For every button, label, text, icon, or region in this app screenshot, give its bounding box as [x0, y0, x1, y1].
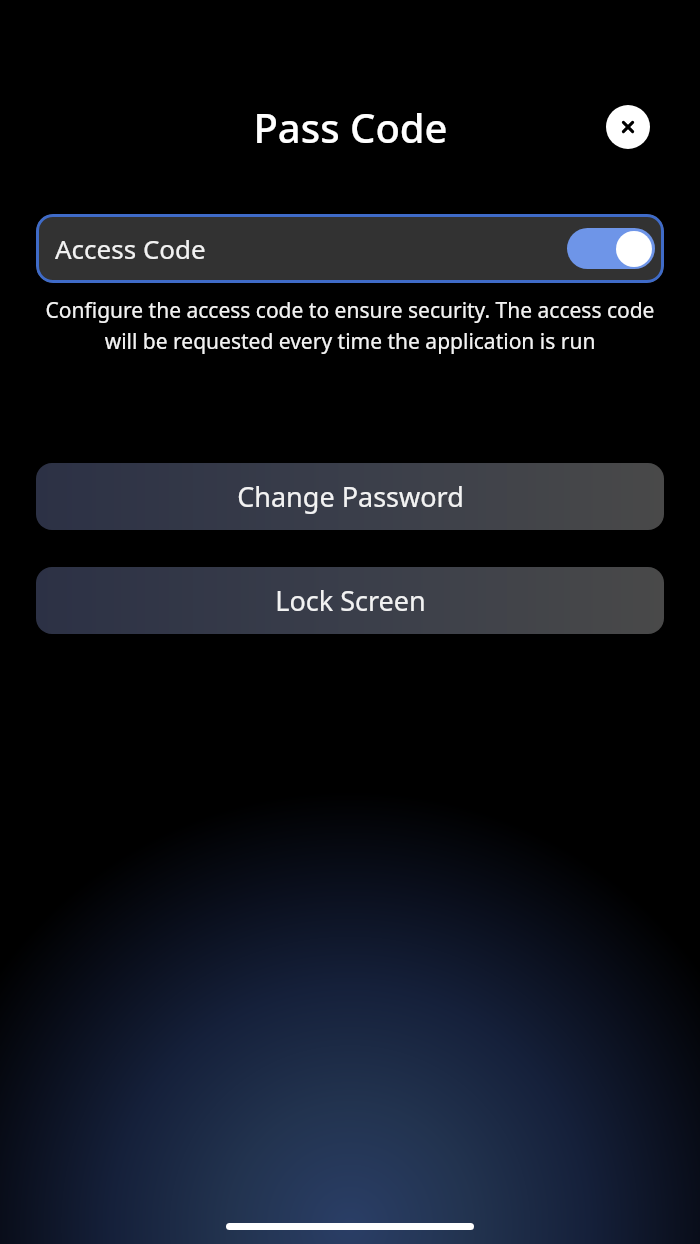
button[interactable]: Lock Screen — [36, 567, 664, 634]
staticText: Change Password — [237, 478, 464, 515]
staticText: Lock Screen — [275, 582, 426, 619]
button[interactable]: Change Password — [36, 463, 664, 530]
other: Access Code toggle, on — [567, 228, 655, 269]
button[interactable]: Close — [606, 105, 650, 149]
staticText: Configure the access code to ensure secu… — [38, 296, 662, 355]
button[interactable]: Access Code — [36, 214, 664, 283]
staticText: Pass Code — [253, 100, 448, 154]
staticText: Access Code — [55, 231, 206, 266]
